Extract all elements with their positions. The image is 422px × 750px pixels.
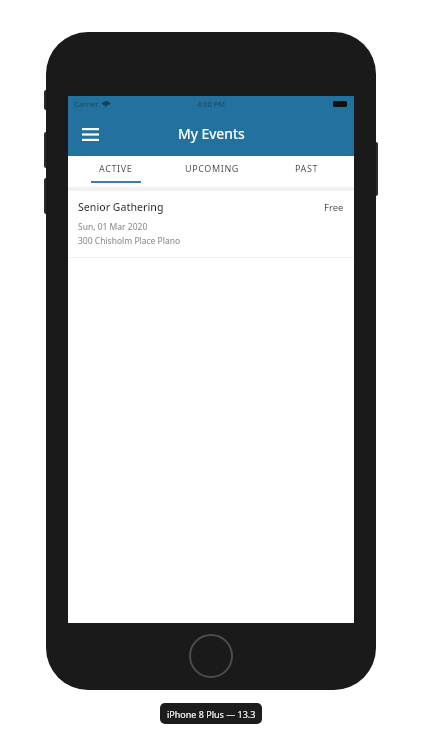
button[interactable]: Home bbox=[189, 634, 233, 678]
button[interactable]: Open navigation menu bbox=[76, 120, 104, 148]
staticText: Carrier bbox=[74, 99, 99, 109]
button[interactable]: Senior Gathering bbox=[68, 191, 354, 257]
button[interactable]: ACTIVE bbox=[68, 156, 163, 187]
staticText: My Events bbox=[178, 124, 245, 143]
staticText: 300 Chisholm Place Plano bbox=[78, 235, 181, 247]
button[interactable]: UPCOMING bbox=[164, 156, 259, 187]
staticText: iPhone 8 Plus — 13.3 bbox=[167, 708, 256, 720]
staticText: ACTIVE bbox=[99, 162, 133, 174]
staticText: 4:00 PM bbox=[197, 99, 226, 109]
staticText: PAST bbox=[295, 162, 319, 174]
staticText: Senior Gathering bbox=[78, 200, 164, 214]
button[interactable]: PAST bbox=[259, 156, 354, 187]
staticText: Sun, 01 Mar 2020 bbox=[78, 221, 148, 233]
staticText: Free bbox=[324, 201, 344, 214]
staticText: UPCOMING bbox=[185, 162, 239, 174]
